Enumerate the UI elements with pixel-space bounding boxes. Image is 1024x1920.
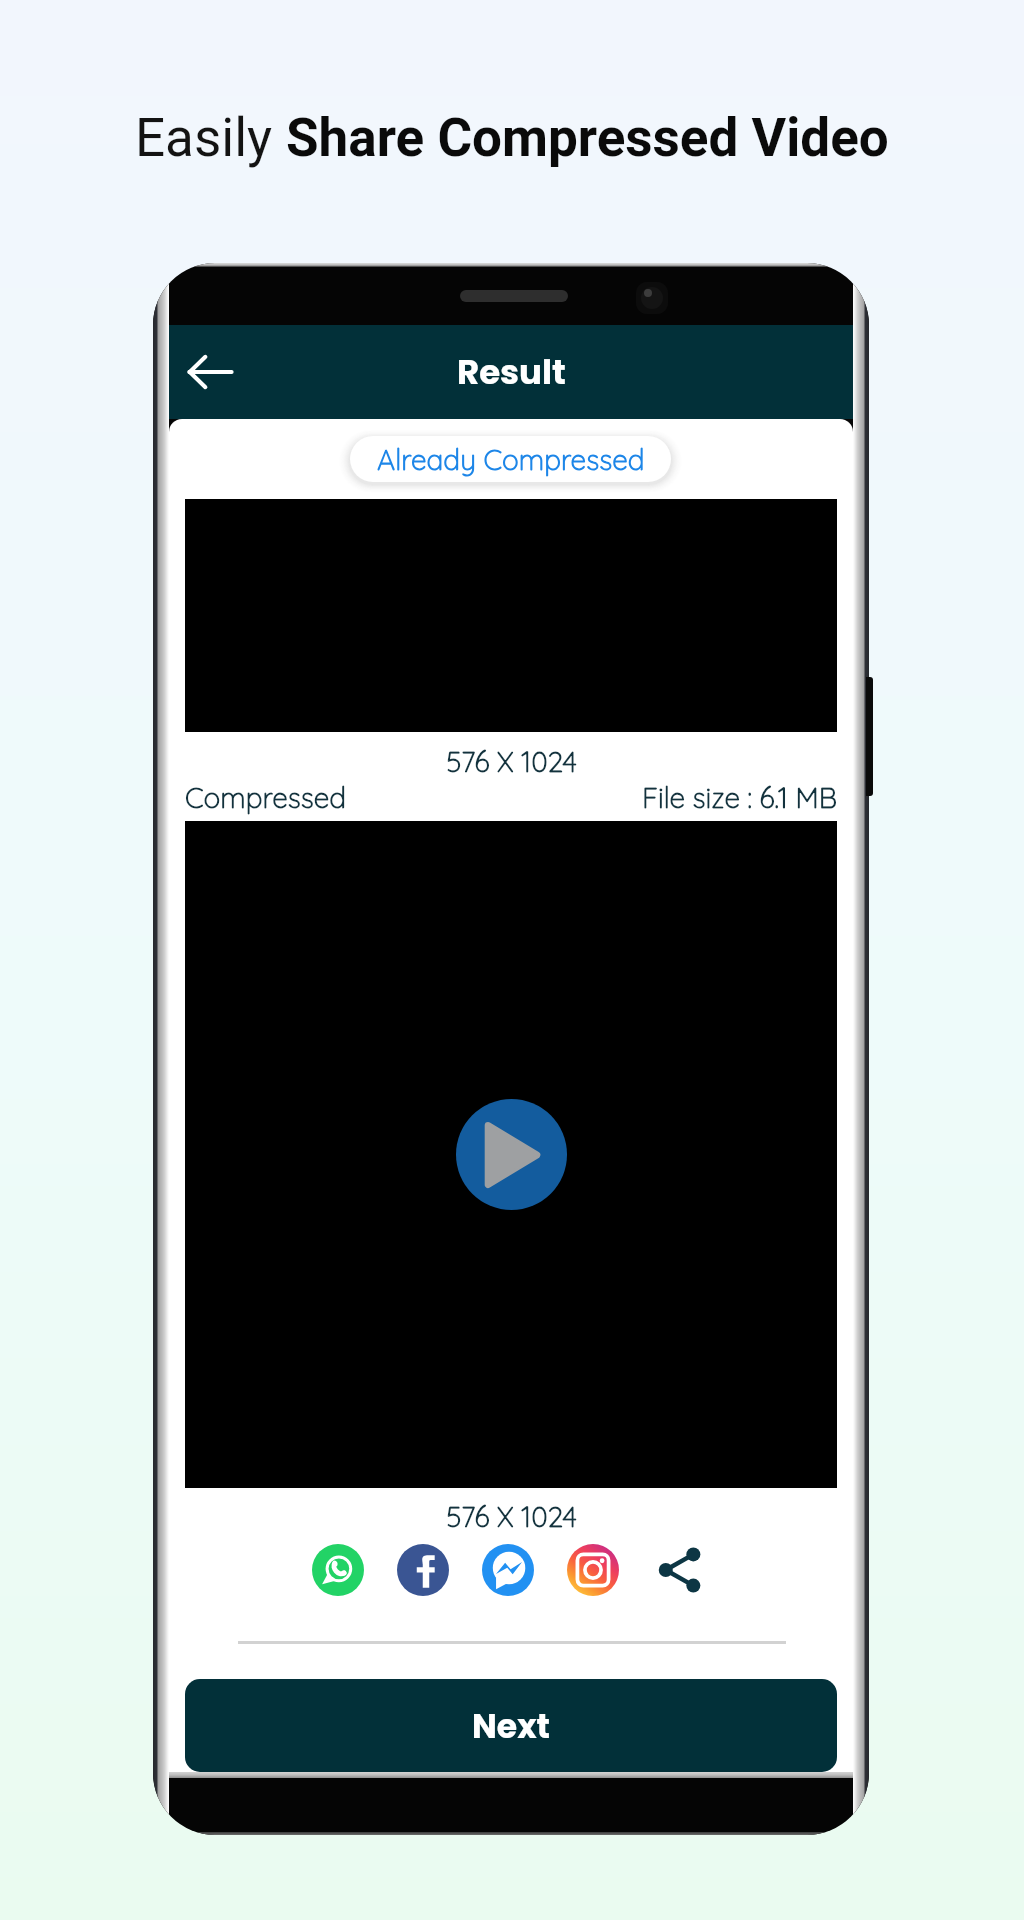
staticText: Already Compressed <box>377 442 645 477</box>
button[interactable]: Play video <box>456 1099 567 1210</box>
button[interactable]: Back <box>174 336 246 408</box>
staticText: 576 X 1024 <box>446 1499 577 1534</box>
staticText: Result <box>457 348 566 396</box>
staticText: Compressed <box>185 780 347 815</box>
staticText: Easily <box>135 107 286 169</box>
staticText: Next <box>472 1703 550 1749</box>
button[interactable]: Share on Instagram <box>563 1540 623 1600</box>
button[interactable]: More share options <box>648 1540 708 1600</box>
staticText: File size : 6.1 MB <box>642 780 837 815</box>
staticText: Share Compressed Video <box>286 107 889 169</box>
button[interactable]: Already Compressed <box>350 436 671 482</box>
button[interactable]: Share on Messenger <box>478 1540 538 1600</box>
button[interactable]: Share on Facebook <box>393 1540 453 1600</box>
button[interactable]: Next <box>185 1679 837 1772</box>
staticText: 576 X 1024 <box>446 744 577 779</box>
button[interactable]: Share on WhatsApp <box>308 1540 368 1600</box>
